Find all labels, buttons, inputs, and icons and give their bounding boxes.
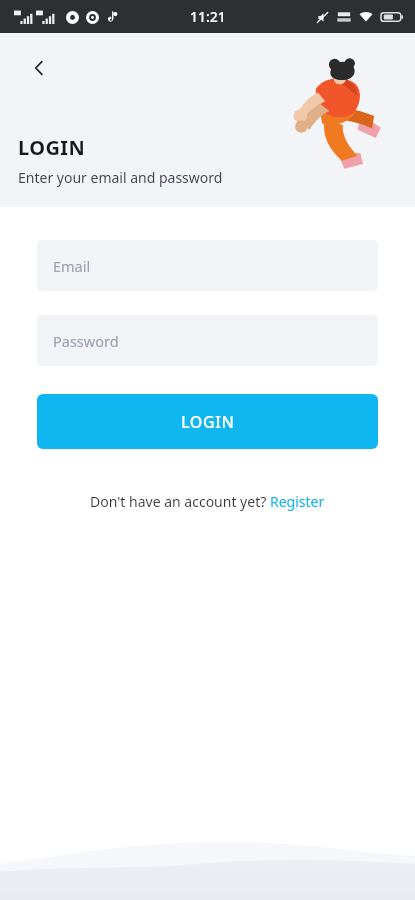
staticText: Enter your email and password [18,168,223,187]
staticText: Register [270,492,325,511]
staticText: LOGIN [181,411,235,433]
button[interactable]: Back [22,51,56,85]
button[interactable]: LOGIN [37,394,378,449]
staticText: Email [53,256,91,276]
staticText: Don't have an account yet? [90,492,270,511]
button[interactable]: Email [37,240,378,291]
button[interactable]: Register [270,492,325,511]
staticText: LOGIN [18,134,86,161]
staticText: 11:21 [190,7,226,26]
button[interactable]: Password [37,315,378,366]
staticText: Password [53,331,119,351]
